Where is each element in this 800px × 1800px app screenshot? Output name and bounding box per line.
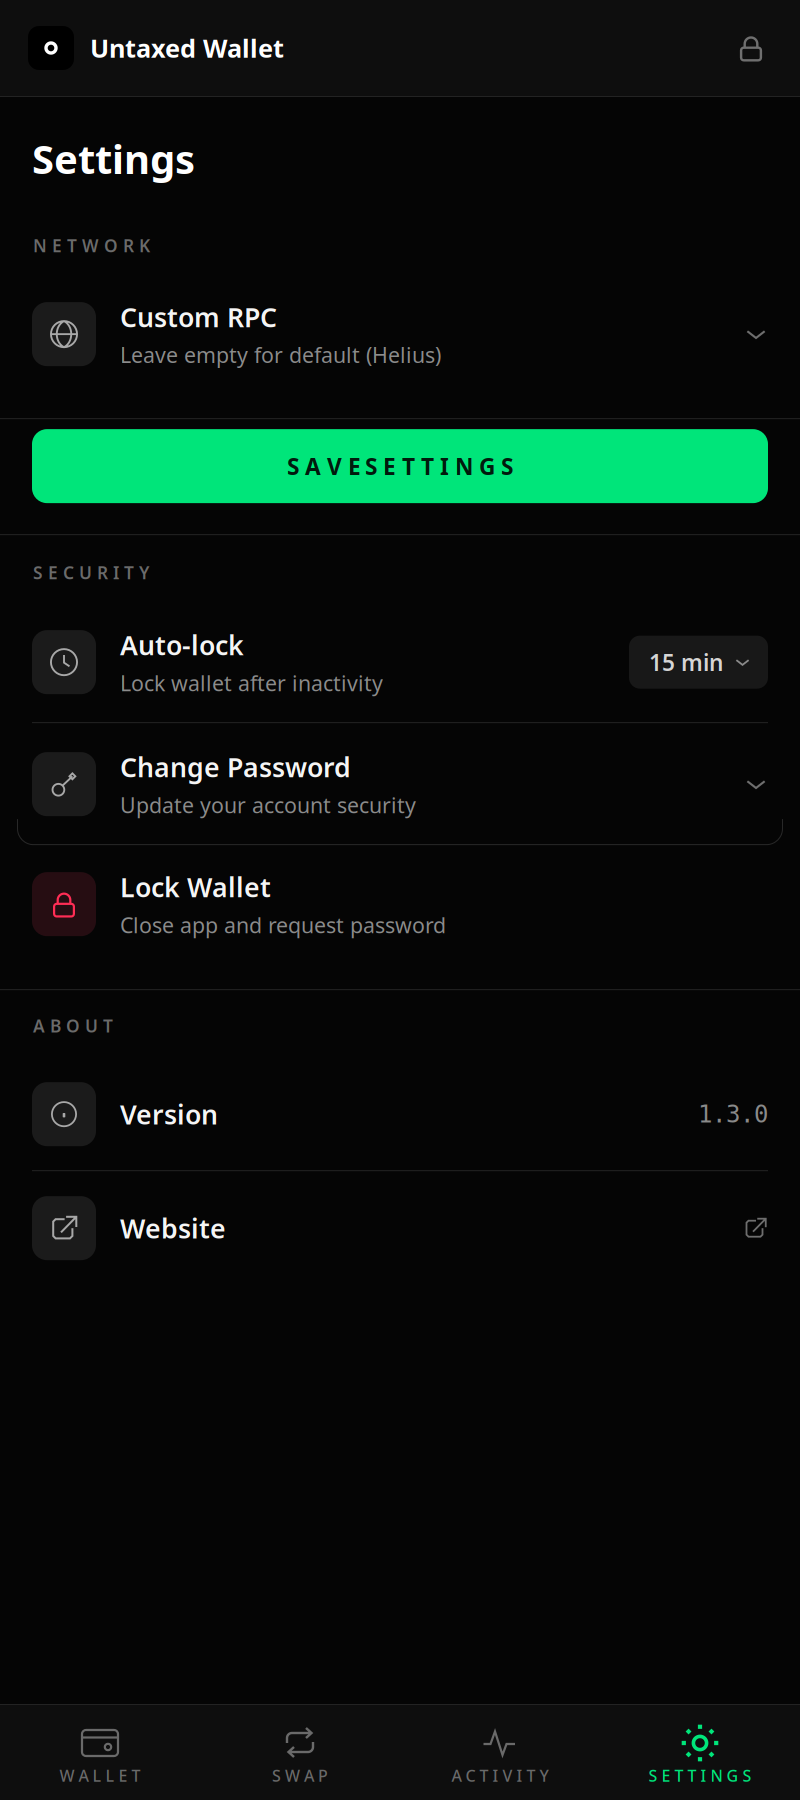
button[interactable]: Lock Wallet <box>0 872 800 936</box>
staticText: Lock Wallet <box>120 869 271 905</box>
staticText: S A V E S E T T I N G S <box>287 451 513 481</box>
staticText: Lock wallet after inactivity <box>120 669 383 697</box>
staticText: Leave empty for default (Helius) <box>120 341 441 369</box>
button[interactable]: Website <box>0 1196 800 1260</box>
staticText: 1.3.0 <box>698 1101 768 1128</box>
button[interactable]: A C T I V I T Y <box>400 1705 600 1800</box>
button[interactable]: Change Password <box>0 752 800 816</box>
staticText: Settings <box>32 132 195 185</box>
button[interactable]: W A L L E T <box>0 1705 200 1800</box>
button[interactable]: Auto-lock <box>0 630 800 694</box>
staticText: Version <box>120 1096 218 1132</box>
staticText: S E T T I N G S <box>648 1765 751 1786</box>
staticText: Close app and request password <box>120 911 446 939</box>
staticText: Update your account security <box>120 791 416 819</box>
button[interactable]: Lock wallet <box>728 25 774 71</box>
staticText: Website <box>120 1210 226 1246</box>
staticText: Untaxed Wallet <box>90 31 284 65</box>
button[interactable]: S W A P <box>200 1705 400 1800</box>
staticText: Custom RPC <box>120 299 277 335</box>
button[interactable]: S E T T I N G S <box>600 1705 800 1800</box>
button[interactable]: Version <box>0 1082 800 1146</box>
button[interactable]: S A V E S E T T I N G S <box>0 429 800 503</box>
button[interactable]: Custom RPC <box>0 302 800 366</box>
staticText: S E C U R I T Y <box>33 561 149 584</box>
staticText: Auto-lock <box>120 627 244 663</box>
staticText: 15 min <box>649 647 723 677</box>
staticText: S W A P <box>272 1765 328 1786</box>
staticText: N E T W O R K <box>33 234 150 257</box>
staticText: A C T I V I T Y <box>451 1765 548 1786</box>
staticText: A B O U T <box>33 1014 113 1037</box>
staticText: W A L L E T <box>59 1765 140 1786</box>
staticText: Change Password <box>120 749 351 785</box>
